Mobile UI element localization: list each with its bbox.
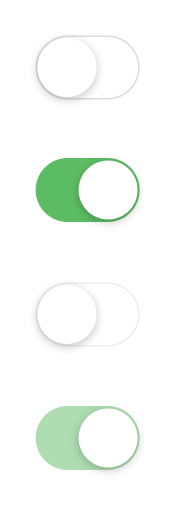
button[interactable]: On [36, 158, 140, 222]
button[interactable]: On [36, 406, 140, 470]
button[interactable]: Off [36, 282, 140, 346]
button[interactable]: Off [36, 35, 140, 99]
